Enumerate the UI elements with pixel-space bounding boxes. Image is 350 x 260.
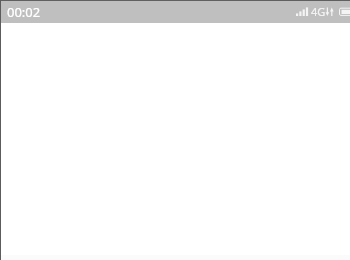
staticText: 4G [311, 4, 326, 19]
staticText: 00:02 [7, 3, 41, 21]
